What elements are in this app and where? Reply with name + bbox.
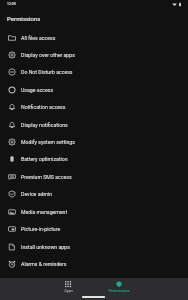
staticText: Permissions bbox=[7, 15, 41, 22]
button[interactable]: Do Not Disturb access bbox=[0, 63, 188, 80]
staticText: All files access bbox=[21, 35, 56, 41]
button[interactable]: Display notifications bbox=[0, 116, 188, 133]
staticText: Display over other apps bbox=[21, 52, 75, 58]
button[interactable]: Notification access bbox=[0, 98, 188, 115]
staticText: Device admin bbox=[21, 191, 53, 197]
staticText: Premium SMS access bbox=[21, 174, 72, 180]
button[interactable]: Display over other apps bbox=[0, 46, 188, 63]
button[interactable]: Alarms & reminders bbox=[0, 255, 188, 272]
button[interactable]: Modify system settings bbox=[0, 133, 188, 150]
staticText: Usage access bbox=[21, 87, 54, 93]
button[interactable]: Battery optimization bbox=[0, 150, 188, 167]
staticText: Modify system settings bbox=[21, 139, 75, 145]
staticText: Alarms & reminders bbox=[21, 261, 67, 267]
staticText: Picture-in-picture bbox=[21, 226, 61, 232]
staticText: Install unknown apps bbox=[21, 244, 70, 250]
button[interactable]: Permissions bbox=[107, 280, 131, 293]
staticText: Apps bbox=[64, 288, 73, 292]
button[interactable]: Install unknown apps bbox=[0, 238, 188, 255]
staticText: Do Not Disturb access bbox=[21, 69, 73, 75]
button[interactable]: Device admin bbox=[0, 185, 188, 202]
button[interactable]: Apps bbox=[56, 280, 80, 293]
staticText: Battery optimization bbox=[21, 156, 68, 162]
button[interactable]: Media management bbox=[0, 203, 188, 220]
staticText: 12:00 bbox=[7, 2, 16, 6]
staticText: Media management bbox=[21, 209, 68, 215]
button[interactable]: Picture-in-picture bbox=[0, 220, 188, 237]
staticText: Notification access bbox=[21, 104, 66, 110]
staticText: Permissions bbox=[108, 288, 130, 292]
button[interactable]: Premium SMS access bbox=[0, 168, 188, 185]
button[interactable]: Usage access bbox=[0, 81, 188, 98]
staticText: Display notifications bbox=[21, 122, 68, 128]
button[interactable]: All files access bbox=[0, 29, 188, 46]
